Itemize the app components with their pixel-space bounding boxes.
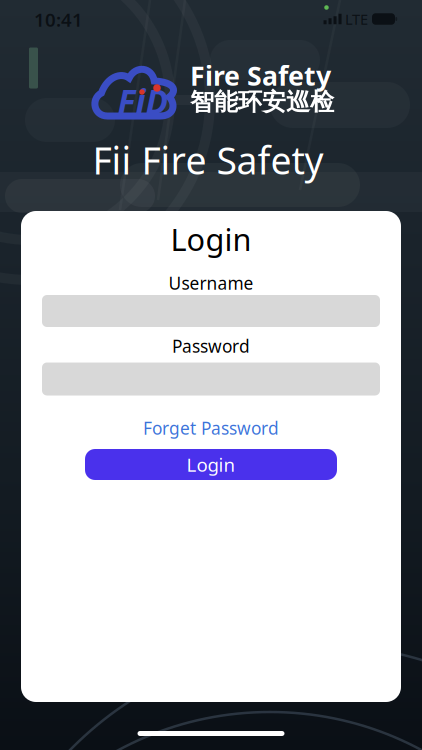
staticText: FiD (117, 79, 168, 123)
staticText: Fii Fire Safety (92, 135, 323, 185)
button[interactable]: Login (85, 449, 337, 480)
staticText: Fire Safety (190, 58, 331, 93)
staticText: Forget Password (143, 416, 279, 439)
staticText: 智能环安巡检 (190, 87, 334, 117)
staticText: Username (168, 271, 253, 294)
button[interactable]: Forget Password (137, 413, 285, 442)
staticText: Password (172, 334, 250, 357)
staticText: 10:41 (34, 7, 83, 32)
staticText: LTE (345, 9, 368, 29)
staticText: Login (170, 219, 251, 259)
staticText: Login (186, 452, 235, 477)
button[interactable]: Password (42, 362, 380, 395)
